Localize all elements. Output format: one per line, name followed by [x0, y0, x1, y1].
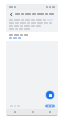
button[interactable] [6, 32, 58, 41]
button[interactable]: Back [6, 109, 24, 115]
button[interactable] [45, 104, 55, 108]
button[interactable] [9, 103, 21, 108]
button[interactable]: Recents [41, 109, 58, 115]
button[interactable]: Home [24, 109, 41, 115]
button[interactable]: Compose [46, 91, 54, 99]
button[interactable]: Back [8, 11, 14, 17]
